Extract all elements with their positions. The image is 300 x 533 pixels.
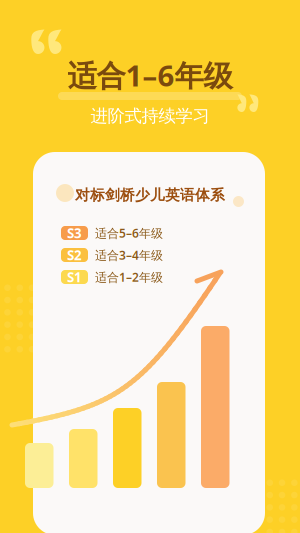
staticText: S3 (67, 224, 82, 242)
staticText: 适合5–6年级 (95, 225, 163, 241)
staticText: S2 (67, 246, 82, 264)
staticText: S1 (67, 268, 82, 286)
staticText: 适合1–2年级 (95, 269, 163, 285)
staticText: 适合3–4年级 (95, 247, 163, 263)
staticText: 进阶式持续学习 (90, 105, 209, 127)
staticText: 适合1–6年级 (67, 55, 232, 94)
staticText: 对标剑桥少儿英语体系 (75, 186, 225, 204)
